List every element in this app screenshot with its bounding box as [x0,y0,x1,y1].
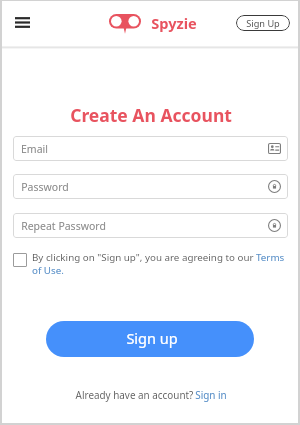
staticText: Sign up [126,328,178,348]
button[interactable]: Sign up [46,321,254,357]
button[interactable]: Email [13,136,288,161]
staticText: Create An Account [70,103,232,127]
button[interactable]: Menu [7,7,37,37]
staticText: Email [21,142,48,156]
staticText: Already have an account? [74,388,195,401]
staticText: Sign in [195,388,227,401]
staticText: Sign Up [246,17,280,30]
staticText: Repeat Password [21,219,106,233]
staticText: Password [21,180,69,194]
button[interactable]: Repeat Password [13,213,288,238]
button[interactable]: Sign in [195,388,227,401]
button[interactable]: Password [13,174,288,199]
button[interactable]: Sign Up [236,15,290,31]
button[interactable]: Accept terms [13,253,27,267]
staticText: Spyzie [151,13,197,33]
staticText: By clicking on "Sign up", you are agreei… [32,251,288,277]
